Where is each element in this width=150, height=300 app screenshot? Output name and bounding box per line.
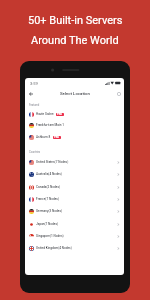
button[interactable]: Haute Saône bbox=[25, 108, 124, 120]
staticText: 3:59 bbox=[30, 81, 38, 86]
staticText: Canada(2 Nodes) bbox=[36, 185, 61, 189]
staticText: Haute Saône bbox=[36, 112, 54, 116]
button[interactable]: France(7 Nodes) bbox=[25, 193, 124, 205]
button[interactable]: Australia(4 Nodes) bbox=[25, 168, 124, 180]
staticText: PRO bbox=[54, 136, 60, 139]
staticText: Countries bbox=[29, 151, 41, 154]
button[interactable]: United Kingdom(4 Nodes) bbox=[25, 242, 124, 254]
staticText: Select Location bbox=[60, 91, 90, 96]
button[interactable]: Frankfurt am Main 1 bbox=[25, 119, 124, 131]
button[interactable]: Germany(3 Nodes) bbox=[25, 205, 124, 217]
staticText: France(7 Nodes) bbox=[36, 197, 59, 201]
button[interactable]: Refresh bbox=[115, 90, 123, 98]
staticText: Singapore(1 Nodes) bbox=[36, 234, 64, 238]
staticText: United States(7 Nodes) bbox=[36, 160, 69, 164]
staticText: Australia(4 Nodes) bbox=[36, 172, 62, 176]
staticText: Featured bbox=[29, 104, 40, 107]
staticText: Japan(7 Nodes) bbox=[36, 222, 59, 226]
staticText: Germany(3 Nodes) bbox=[36, 209, 63, 213]
staticText: Around The World bbox=[31, 34, 119, 47]
staticText: Frankfurt am Main 1 bbox=[36, 123, 65, 127]
button[interactable]: Canada(2 Nodes) bbox=[25, 181, 124, 193]
button[interactable]: Singapore(1 Nodes) bbox=[25, 230, 124, 242]
button[interactable]: Back bbox=[27, 90, 35, 98]
button[interactable]: United States(7 Nodes) bbox=[25, 156, 124, 168]
staticText: Ashburn 8 bbox=[36, 135, 51, 139]
staticText: 50+ Built-in Servers bbox=[28, 14, 123, 27]
button[interactable]: Ashburn 8 bbox=[25, 131, 124, 143]
staticText: United Kingdom(4 Nodes) bbox=[36, 246, 72, 250]
staticText: PRO bbox=[57, 113, 63, 116]
button[interactable]: Japan(7 Nodes) bbox=[25, 218, 124, 230]
